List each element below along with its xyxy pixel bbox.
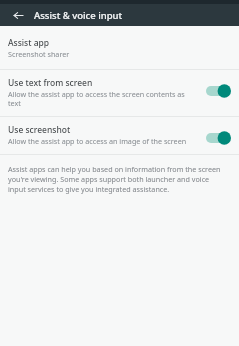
staticText: Allow the assist app to access an image … <box>8 137 187 146</box>
button[interactable]: Use text from screen <box>0 70 239 116</box>
staticText: Allow the assist app to access the scree… <box>8 90 197 108</box>
button[interactable]: Back <box>8 5 28 25</box>
button[interactable]: Toggle Use text from screen <box>203 83 233 99</box>
staticText: Use screenshot <box>8 124 71 135</box>
staticText: Screenshot sharer <box>8 50 70 60</box>
staticText: Assist apps can help you based on inform… <box>8 164 225 194</box>
staticText: Assist app <box>8 37 50 48</box>
button[interactable]: Toggle Use screenshot <box>203 130 233 146</box>
staticText: Use text from screen <box>8 77 93 88</box>
button[interactable]: Use screenshot <box>0 117 239 154</box>
button[interactable]: Assist app <box>0 30 239 69</box>
staticText: Assist & voice input <box>34 9 123 22</box>
